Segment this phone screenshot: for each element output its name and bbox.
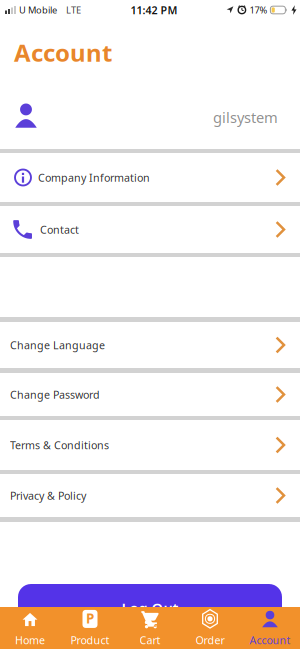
staticText: Change Language — [10, 338, 105, 352]
staticText: gilsystem — [213, 107, 278, 127]
button[interactable]: Change Password — [0, 373, 300, 416]
staticText: Cart — [139, 633, 160, 647]
button[interactable]: Account — [240, 607, 300, 649]
staticText: Account — [249, 633, 290, 647]
button[interactable]: Terms & Conditions — [0, 420, 300, 470]
button[interactable]: Company Information — [0, 153, 300, 202]
button[interactable]: Cart — [120, 607, 180, 649]
staticText: Privacy & Policy — [10, 488, 86, 503]
staticText: Home — [15, 633, 45, 647]
staticText: 11:42 PM — [130, 3, 177, 17]
staticText: Product — [70, 633, 109, 647]
button[interactable]: gilsystem — [0, 70, 300, 149]
button[interactable]: Change Language — [0, 322, 300, 368]
staticText: Account — [14, 37, 112, 68]
staticText: P — [86, 610, 94, 627]
staticText: Order — [195, 633, 224, 647]
staticText: Company Information — [38, 170, 150, 185]
staticText: Terms & Conditions — [10, 438, 109, 452]
staticText: LTE — [66, 4, 81, 16]
staticText: 17% — [249, 4, 267, 16]
button[interactable]: Order — [180, 607, 240, 649]
button[interactable]: P — [60, 607, 120, 649]
button[interactable]: Log Out — [18, 584, 282, 632]
staticText: Log Out — [121, 598, 178, 618]
staticText: U Mobile — [19, 4, 57, 16]
button[interactable]: Home — [0, 607, 60, 649]
staticText: Contact — [40, 222, 79, 237]
button[interactable]: Privacy & Policy — [0, 474, 300, 517]
staticText: Change Password — [10, 387, 100, 402]
button[interactable]: Contact — [0, 206, 300, 253]
